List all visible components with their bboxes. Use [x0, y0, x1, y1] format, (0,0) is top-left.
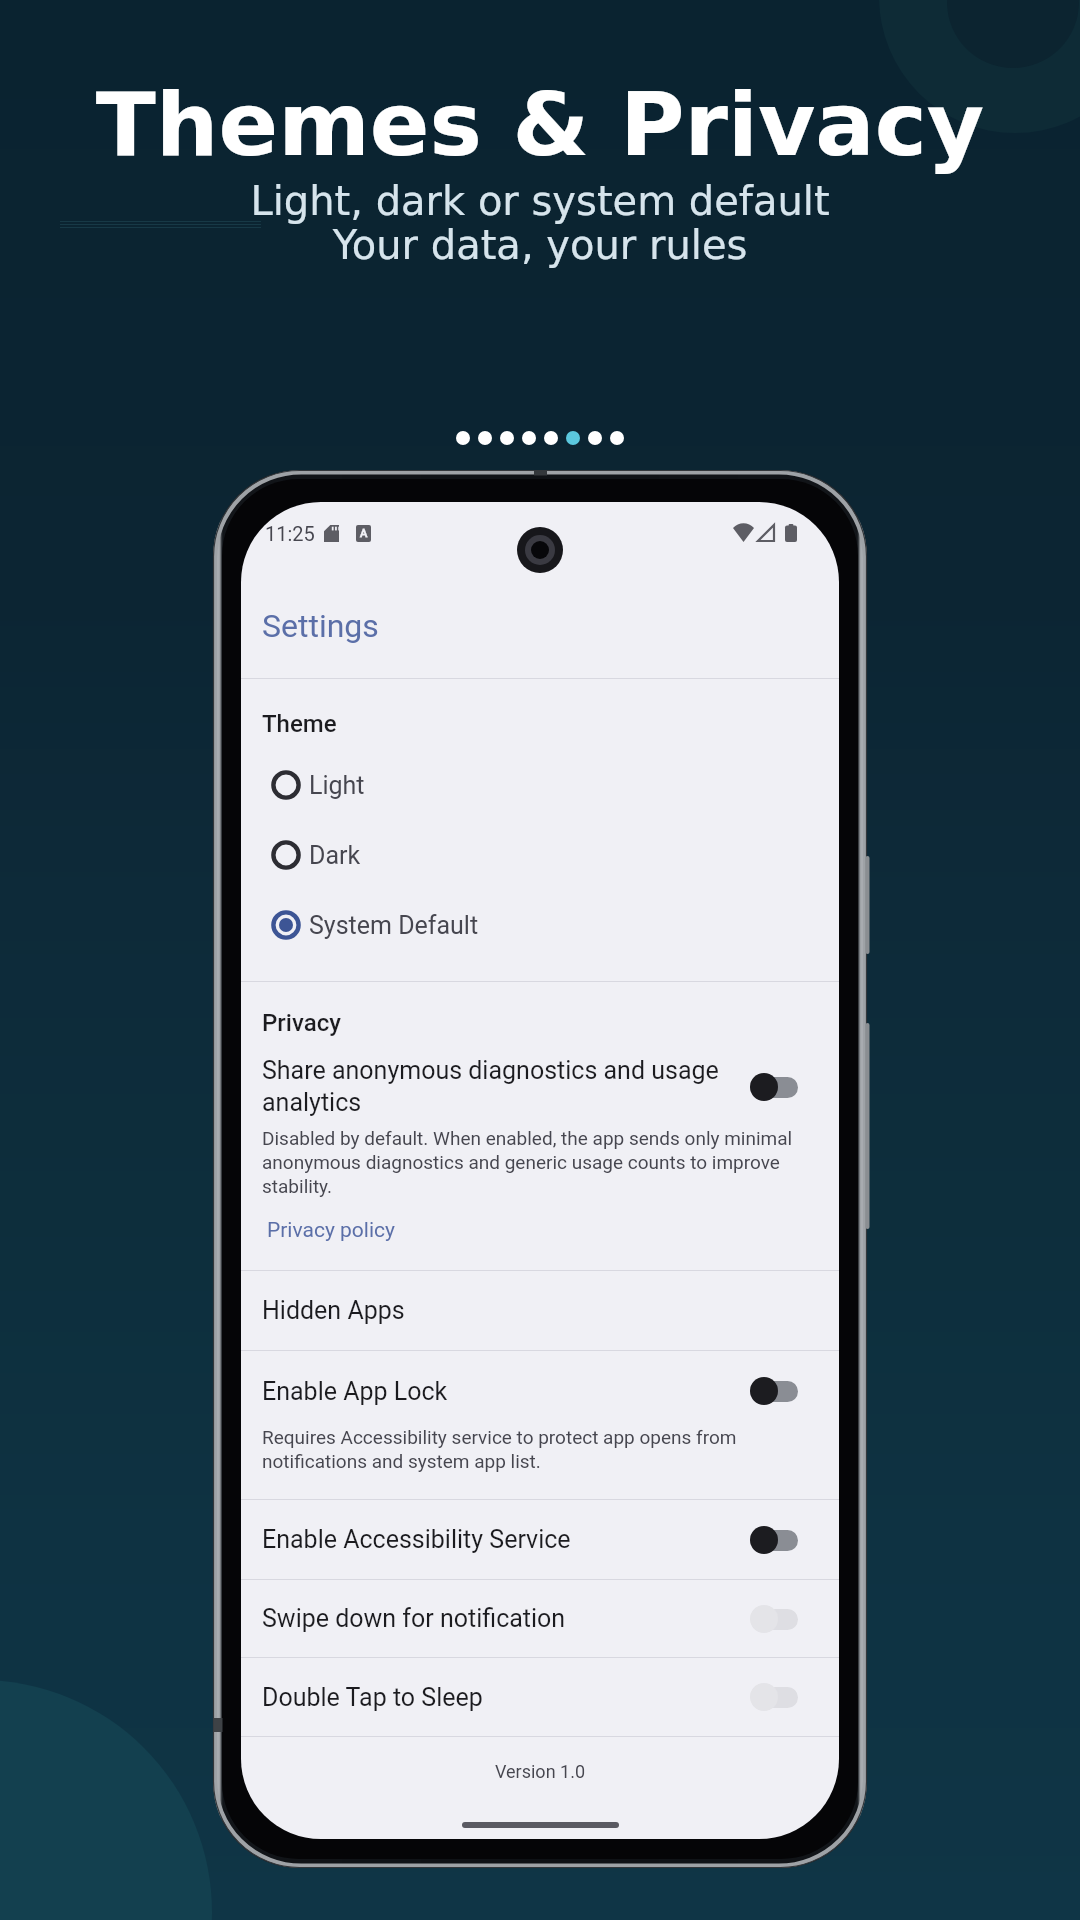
button[interactable] — [750, 1604, 798, 1634]
staticText: Hidden Apps — [262, 1296, 405, 1325]
staticText: 11:25 — [265, 522, 315, 545]
staticText: Light, dark or system default Your data,… — [0, 178, 1080, 269]
button[interactable]: Light — [241, 750, 839, 820]
staticText: Privacy policy — [267, 1218, 395, 1243]
button[interactable] — [750, 1072, 798, 1102]
button[interactable]: Share anonymous diagnostics and usage an… — [241, 1056, 839, 1117]
button[interactable] — [750, 1682, 798, 1712]
staticText: Settings — [262, 607, 379, 645]
button[interactable]: Double Tap to Sleep — [241, 1658, 839, 1736]
button[interactable]: Enable Accessibility Service — [241, 1500, 839, 1579]
button[interactable] — [750, 1376, 798, 1406]
staticText: Privacy — [262, 1009, 341, 1037]
button[interactable]: Swipe down for notification — [241, 1580, 839, 1657]
button[interactable]: Hidden Apps — [241, 1271, 839, 1350]
staticText: Double Tap to Sleep — [262, 1683, 750, 1712]
staticText: Requires Accessibility service to protec… — [262, 1426, 798, 1473]
button[interactable]: System Default — [241, 890, 839, 960]
staticText: Light — [309, 771, 365, 800]
staticText: Share anonymous diagnostics and usage an… — [262, 1056, 738, 1117]
staticText: System Default — [309, 911, 479, 940]
button[interactable]: Dark — [241, 820, 839, 890]
staticText: Enable App Lock — [262, 1377, 750, 1406]
staticText: Disabled by default. When enabled, the a… — [262, 1127, 816, 1198]
button[interactable]: Privacy policy — [241, 1218, 395, 1243]
button[interactable] — [750, 1525, 798, 1555]
staticText: Enable Accessibility Service — [262, 1525, 750, 1554]
staticText: Swipe down for notification — [262, 1604, 750, 1633]
staticText: Version 1.0 — [241, 1761, 839, 1782]
staticText: Theme — [262, 710, 337, 738]
staticText: A — [360, 527, 368, 540]
staticText: Themes & Privacy — [0, 73, 1080, 175]
button[interactable]: Enable App Lock — [241, 1351, 839, 1499]
staticText: Dark — [309, 841, 361, 870]
